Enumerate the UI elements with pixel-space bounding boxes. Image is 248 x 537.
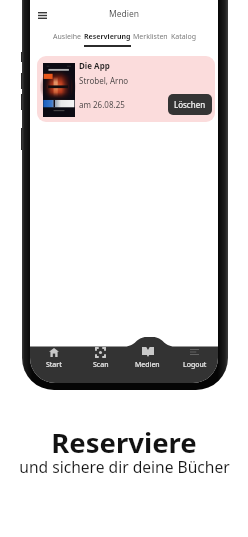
button[interactable]: Die App: [37, 56, 215, 122]
button[interactable]: Scan: [77, 347, 124, 370]
button[interactable]: Logout: [171, 347, 218, 370]
staticText: Strobel, Arno: [79, 75, 129, 86]
staticText: Medien: [135, 360, 160, 370]
button[interactable]: Ausleihe: [53, 32, 81, 45]
staticText: Die App: [79, 60, 110, 71]
staticText: Reserviere: [51, 424, 197, 461]
staticText: Reservierung: [84, 32, 131, 42]
staticText: am 26.08.25: [79, 99, 125, 110]
button[interactable]: Start: [30, 347, 77, 370]
staticText: Medien: [109, 8, 139, 20]
staticText: Scan: [93, 360, 109, 370]
button[interactable]: Löschen: [168, 94, 212, 115]
staticText: und sichere dir deine Bücher: [19, 456, 230, 477]
button[interactable]: Katalog: [171, 32, 197, 45]
button[interactable]: Menu: [34, 7, 50, 23]
button[interactable]: Reservierung: [84, 32, 131, 47]
staticText: Katalog: [171, 32, 197, 42]
button[interactable]: Merklisten: [133, 32, 168, 45]
staticText: Löschen: [174, 99, 206, 110]
staticText: Ausleihe: [53, 32, 81, 42]
button[interactable]: Medien: [124, 347, 171, 370]
staticText: Merklisten: [133, 32, 168, 42]
staticText: Start: [46, 360, 62, 370]
staticText: Logout: [183, 360, 207, 370]
